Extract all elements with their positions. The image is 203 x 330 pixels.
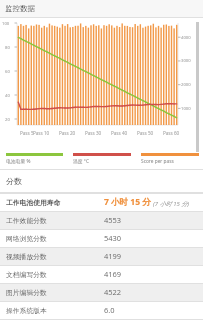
staticText: (7 小时 15 分) (153, 200, 190, 208)
staticText: 分数 (6, 176, 22, 186)
staticText: 操作系统版本 (6, 306, 47, 315)
button[interactable]: Score per pass (141, 153, 199, 165)
staticText: Score per pass (141, 158, 174, 165)
staticText: 5430 (104, 233, 122, 243)
button[interactable]: 温度 °C (73, 153, 131, 165)
button[interactable]: 监控数据 (0, 0, 203, 17)
staticText: 4553 (104, 215, 122, 225)
button[interactable]: 文档编写分数 (0, 265, 203, 283)
staticText: 20 (5, 117, 10, 123)
button[interactable]: 图片编辑分数 (0, 283, 203, 301)
staticText: 7 小时 15 分 (104, 196, 151, 208)
staticText: 4000 (181, 35, 191, 41)
staticText: 100 (2, 21, 10, 27)
staticText: Pass 50 (137, 130, 154, 136)
staticText: Pass 60 (163, 130, 180, 136)
staticText: 工作电池使用寿命 (6, 198, 61, 207)
button[interactable]: 视频播放分数 (0, 247, 203, 265)
staticText: 视频播放分数 (6, 252, 47, 261)
staticText: 80 (5, 45, 10, 51)
button[interactable]: 网络浏览分数 (0, 229, 203, 247)
staticText: 2000 (181, 82, 191, 88)
staticText: Pass 20 (59, 130, 76, 136)
staticText: 60 (5, 69, 10, 75)
staticText: Pass 5 (20, 130, 34, 136)
staticText: 电池电量 % (6, 158, 31, 165)
staticText: 工作效能分数 (6, 216, 47, 225)
staticText: Pass 40 (111, 130, 128, 136)
staticText: 温度 °C (73, 158, 89, 165)
staticText: 1000 (181, 106, 191, 112)
staticText: 6.0 (104, 305, 115, 315)
staticText: Pass 10 (33, 130, 50, 136)
staticText: 文档编写分数 (6, 270, 47, 279)
staticText: 4199 (104, 251, 122, 261)
button[interactable]: Battery monitor chart (0, 18, 203, 153)
staticText: 监控数据 (5, 4, 35, 13)
staticText: 40 (5, 93, 10, 99)
button[interactable]: 电池电量 % (6, 153, 63, 165)
staticText: 网络浏览分数 (6, 234, 47, 243)
staticText: Pass 30 (85, 130, 102, 136)
staticText: 3000 (181, 58, 191, 64)
staticText: 图片编辑分数 (6, 288, 47, 297)
button[interactable]: 工作效能分数 (0, 211, 203, 229)
staticText: 4522 (104, 287, 122, 297)
button[interactable]: 操作系统版本 (0, 301, 203, 319)
button[interactable]: 工作电池使用寿命 (0, 193, 203, 211)
staticText: 4169 (104, 269, 122, 279)
